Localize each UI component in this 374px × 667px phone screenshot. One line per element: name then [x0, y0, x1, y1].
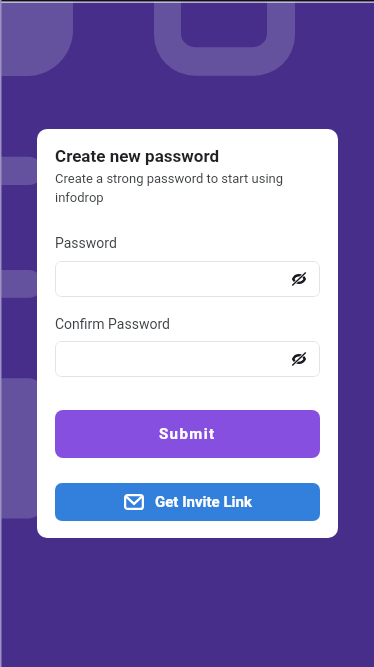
button[interactable]: Show password [288, 348, 310, 370]
staticText: Confirm Password [55, 316, 170, 332]
button[interactable]: Show password [55, 341, 320, 377]
button[interactable]: Show password [55, 261, 320, 297]
button[interactable]: Show password [288, 268, 310, 290]
staticText: Password [55, 235, 117, 251]
staticText: Submit [159, 425, 216, 443]
staticText: Create new password [55, 146, 220, 166]
button[interactable]: Get Invite Link [55, 483, 320, 521]
staticText: Create a strong password to start using … [55, 171, 290, 206]
staticText: Get Invite Link [155, 493, 252, 511]
button[interactable]: Submit [55, 410, 320, 458]
